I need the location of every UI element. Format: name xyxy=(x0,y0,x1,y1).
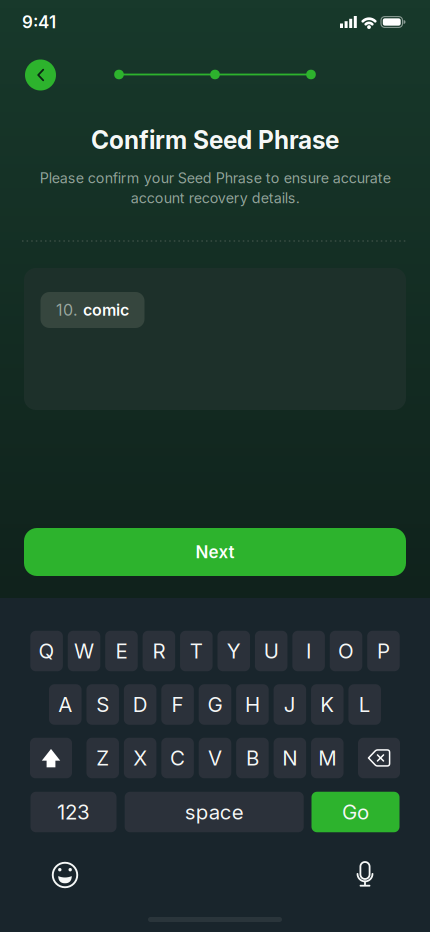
staticText: J xyxy=(284,692,296,717)
button[interactable]: space xyxy=(125,792,304,832)
staticText: Confirm Seed Phrase xyxy=(91,125,339,155)
button[interactable]: K xyxy=(311,684,343,725)
button[interactable]: P xyxy=(367,631,400,671)
button[interactable]: N xyxy=(274,738,306,778)
staticText: X xyxy=(133,746,147,770)
button[interactable]: U xyxy=(255,631,287,671)
button[interactable]: Emoji xyxy=(51,861,78,888)
staticText: E xyxy=(115,639,127,663)
button[interactable]: B xyxy=(236,738,269,778)
button[interactable]: T xyxy=(180,631,213,671)
button[interactable]: O xyxy=(330,631,362,671)
button[interactable]: R xyxy=(143,631,175,671)
staticText: Please confirm your Seed Phrase to ensur… xyxy=(39,169,390,207)
button[interactable]: H xyxy=(236,684,269,725)
button[interactable]: Shift xyxy=(30,738,72,778)
button[interactable]: E xyxy=(105,631,138,671)
staticText: G xyxy=(207,692,222,717)
staticText: 123 xyxy=(57,800,90,824)
button[interactable]: W xyxy=(68,631,100,671)
button[interactable]: X xyxy=(124,738,156,778)
button[interactable]: D xyxy=(124,684,156,725)
staticText: Next xyxy=(195,542,234,562)
staticText: L xyxy=(359,692,371,717)
staticText: F xyxy=(172,692,184,717)
staticText: comic xyxy=(83,300,129,320)
button[interactable]: 10. xyxy=(40,292,144,328)
button[interactable]: C xyxy=(161,738,194,778)
staticText: Z xyxy=(96,746,109,770)
staticText: space xyxy=(185,800,244,824)
button[interactable]: G xyxy=(199,684,231,725)
staticText: A xyxy=(58,692,72,717)
button[interactable]: V xyxy=(199,738,231,778)
staticText: T xyxy=(190,639,203,663)
button[interactable]: Z xyxy=(86,738,119,778)
staticText: C xyxy=(170,746,185,770)
staticText: I xyxy=(306,639,311,663)
button[interactable]: I xyxy=(292,631,325,671)
staticText: R xyxy=(152,639,165,663)
staticText: Go xyxy=(342,800,369,824)
staticText: 9:41 xyxy=(22,12,56,32)
staticText: W xyxy=(74,639,94,663)
button[interactable]: Next xyxy=(24,528,406,576)
staticText: Q xyxy=(39,639,55,663)
staticText: U xyxy=(264,639,279,663)
button[interactable]: A xyxy=(49,684,81,725)
button[interactable]: S xyxy=(86,684,119,725)
button[interactable]: Q xyxy=(30,631,63,671)
button[interactable]: Back xyxy=(25,59,56,90)
button[interactable]: Dictate xyxy=(351,860,378,887)
staticText: M xyxy=(318,746,336,770)
button[interactable]: Go xyxy=(311,792,399,832)
button[interactable]: Y xyxy=(217,631,250,671)
staticText: N xyxy=(282,746,297,770)
staticText: S xyxy=(96,692,109,717)
button[interactable]: M xyxy=(311,738,343,778)
staticText: P xyxy=(377,639,390,663)
staticText: D xyxy=(133,692,148,717)
button[interactable]: L xyxy=(348,684,381,725)
staticText: K xyxy=(320,692,334,717)
staticText: H xyxy=(245,692,260,717)
button[interactable]: 123 xyxy=(30,792,116,832)
button[interactable]: F xyxy=(161,684,194,725)
staticText: B xyxy=(246,746,259,770)
button[interactable]: Delete xyxy=(358,738,400,778)
staticText: V xyxy=(208,746,222,770)
staticText: O xyxy=(338,639,354,663)
staticText: 10. xyxy=(56,300,78,320)
button[interactable]: J xyxy=(274,684,306,725)
staticText: Y xyxy=(227,639,241,663)
